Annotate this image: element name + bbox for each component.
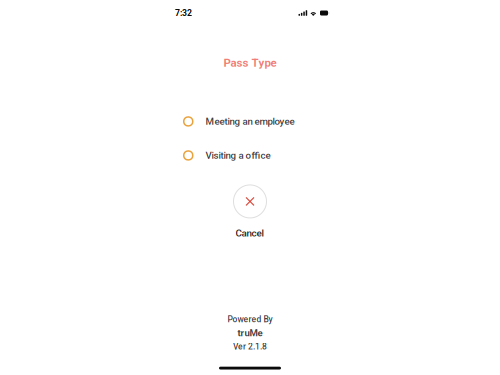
staticText: 7:32 [175, 8, 192, 18]
button[interactable]: Visiting a office [183, 138, 317, 172]
button[interactable]: Meeting an employee [183, 104, 317, 138]
staticText: Visiting a office [205, 150, 270, 161]
button[interactable]: Cancel [233, 184, 267, 239]
staticText: Meeting an employee [205, 116, 294, 127]
staticText: truMe [237, 327, 262, 339]
staticText: Pass Type [223, 56, 276, 69]
staticText: Powered By [227, 314, 272, 324]
staticText: Ver 2.1.8 [233, 342, 267, 352]
staticText: Cancel [235, 227, 264, 239]
